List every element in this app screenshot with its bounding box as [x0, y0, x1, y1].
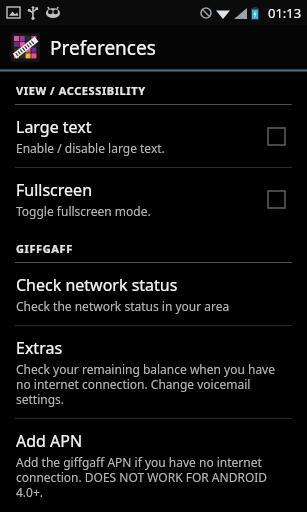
staticText: Check your remaining balance when you ha… [16, 361, 291, 407]
button[interactable]: Fullscreen [0, 168, 307, 230]
button[interactable]: Check network status [0, 263, 307, 325]
staticText: Extras [16, 337, 63, 359]
button[interactable]: Fullscreen [261, 184, 291, 214]
staticText: Add APN [16, 430, 83, 452]
button[interactable]: Large text [261, 121, 291, 151]
staticText: Toggle fullscreen mode. [16, 203, 151, 219]
staticText: VIEW / ACCESSIBILITY [16, 83, 146, 98]
staticText: Check the network status in your area [16, 298, 230, 314]
button[interactable]: giffgaff [11, 33, 40, 62]
staticText: Large text [16, 116, 92, 138]
staticText: Preferences [50, 35, 156, 61]
button[interactable]: Extras [0, 326, 307, 418]
button[interactable]: Large text [0, 105, 307, 167]
staticText: 01:13 [268, 4, 302, 22]
staticText: Fullscreen [16, 179, 93, 201]
staticText: Enable / disable large text. [16, 140, 165, 156]
staticText: GIFFGAFF [16, 241, 73, 256]
staticText: Add the giffgaff APN if you have no inte… [16, 454, 291, 500]
staticText: Check network status [16, 274, 178, 296]
button[interactable]: Add APN [0, 419, 307, 511]
